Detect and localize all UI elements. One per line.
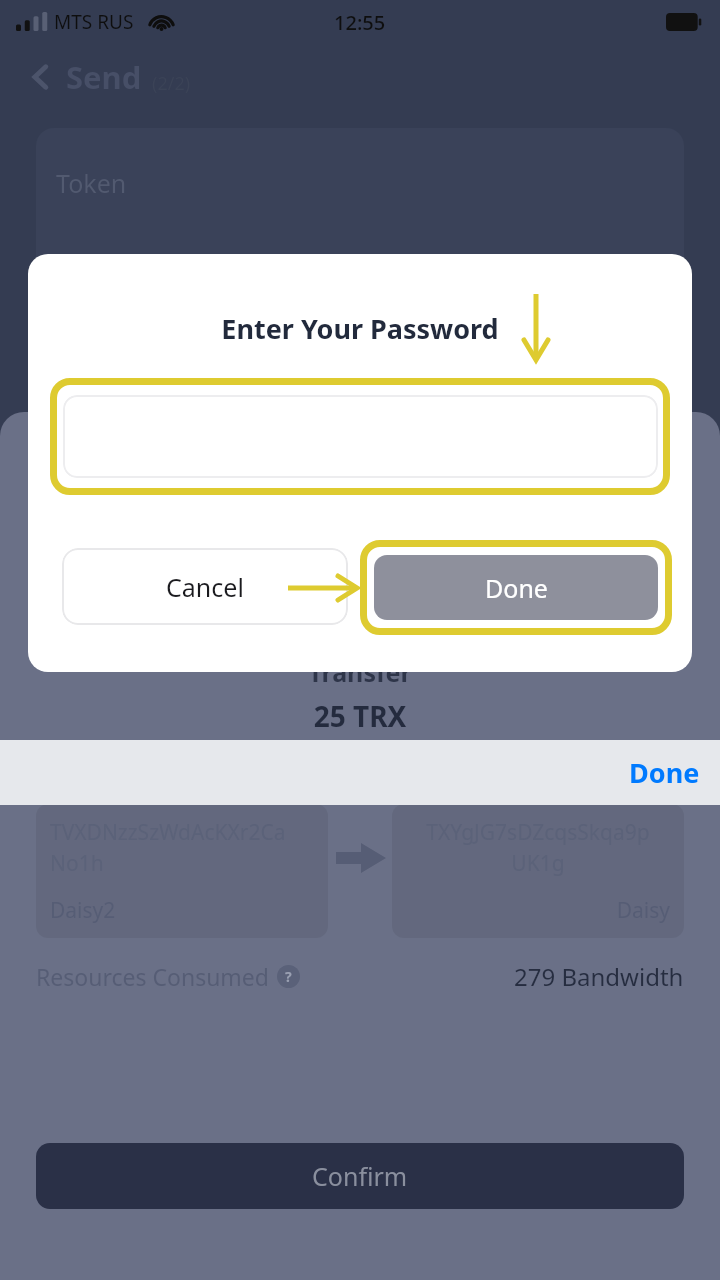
staticText: Daisy2 <box>50 896 116 925</box>
staticText: Confirm <box>312 1159 408 1193</box>
staticText: Token <box>56 166 127 200</box>
button[interactable]: Confirm <box>36 1143 684 1209</box>
staticText: Done <box>485 571 548 605</box>
staticText: Resources Consumed <box>36 961 269 992</box>
button[interactable]: Cancel <box>62 548 348 625</box>
staticText: ? <box>285 967 292 986</box>
staticText: 12:55 <box>334 9 386 36</box>
staticText: 279 Bandwidth <box>514 960 684 993</box>
button[interactable]: Token <box>36 128 684 420</box>
staticText: Cancel <box>166 570 244 604</box>
button[interactable]: Help <box>277 965 300 988</box>
button[interactable]: Password field <box>63 395 658 478</box>
staticText: Enter Your Password <box>28 310 692 347</box>
staticText: Transfer <box>0 655 720 689</box>
button[interactable]: Back <box>24 60 58 94</box>
button[interactable]: TVXDNzzSzWdAcKXr2Ca No1h <box>36 804 328 938</box>
staticText: MTS RUS <box>54 9 134 35</box>
button[interactable]: Done <box>629 754 700 791</box>
staticText: 25 TRX <box>0 697 720 735</box>
button[interactable]: Done <box>374 555 658 620</box>
button[interactable]: TXYgJG7sDZcqsSkqa9p UK1g <box>392 804 684 938</box>
staticText: Done <box>629 754 700 791</box>
staticText: Send <box>66 56 142 98</box>
